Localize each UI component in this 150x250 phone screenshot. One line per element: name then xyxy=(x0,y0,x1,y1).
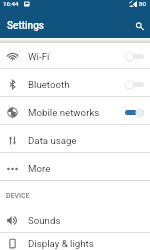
staticText: Settings xyxy=(7,20,45,32)
staticText: Wi-Fi xyxy=(28,51,50,62)
button[interactable]: Search xyxy=(128,15,150,37)
staticText: 80 xyxy=(139,0,146,7)
staticText: More xyxy=(28,163,51,174)
staticText: Bluetooth xyxy=(28,79,70,90)
button[interactable]: Sounds xyxy=(0,205,150,232)
staticText: 16:44 xyxy=(3,0,19,7)
staticText: Sounds xyxy=(28,215,61,226)
button[interactable]: Mobile networks xyxy=(0,97,150,124)
button[interactable]: Bluetooth xyxy=(0,69,150,96)
staticText: Display & lights xyxy=(28,238,94,249)
button[interactable]: Wi-Fi xyxy=(0,41,150,68)
staticText: DEVICE xyxy=(6,192,30,200)
button[interactable]: Display & lights xyxy=(0,233,150,250)
button[interactable]: Data usage xyxy=(0,125,150,152)
staticText: Data usage xyxy=(28,135,77,146)
button[interactable]: More xyxy=(0,153,150,180)
staticText: Mobile networks xyxy=(28,107,100,118)
